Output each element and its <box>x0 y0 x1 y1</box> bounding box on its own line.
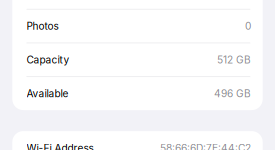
button[interactable]: Capacity <box>12 43 263 76</box>
button[interactable]: Photos <box>12 9 263 43</box>
staticText: 512 GB <box>217 54 251 66</box>
staticText: Photos <box>26 20 58 32</box>
staticText: 496 GB <box>214 87 251 100</box>
staticText: 0 <box>245 20 251 32</box>
staticText: Capacity <box>26 54 69 66</box>
staticText: 58:66:6D:7E:44:C2 <box>160 142 251 150</box>
button[interactable]: Wi-Fi Address <box>12 131 263 150</box>
staticText: Wi-Fi Address <box>26 142 93 150</box>
button[interactable]: Available <box>12 76 263 110</box>
staticText: Available <box>26 87 68 100</box>
